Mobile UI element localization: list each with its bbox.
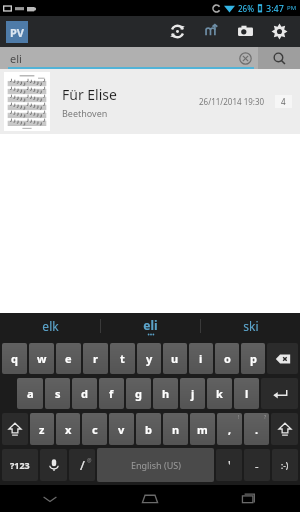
staticText: elk (42, 318, 59, 334)
staticText: o (224, 351, 231, 366)
staticText: d (81, 386, 88, 401)
button[interactable]: Emoticon (272, 449, 298, 481)
button[interactable]: Shift (271, 413, 298, 445)
button[interactable]: Symbols (2, 449, 38, 481)
staticText: e (65, 351, 72, 366)
staticText: a (27, 386, 34, 401)
button[interactable]: 4 (275, 95, 292, 108)
button[interactable]: l (234, 378, 259, 409)
staticText: i (199, 351, 203, 366)
staticText: , (228, 422, 232, 437)
button[interactable]: n (163, 413, 188, 445)
button[interactable]: a (17, 378, 43, 409)
staticText: eli (10, 51, 22, 66)
button[interactable]: Shift (2, 413, 28, 445)
staticText: l (245, 386, 249, 401)
staticText: Beethoven (62, 107, 108, 119)
staticText: 3:47 (266, 2, 284, 14)
button[interactable]: . (244, 413, 269, 445)
staticText: q (11, 351, 18, 366)
staticText: f (109, 386, 114, 401)
staticText: p (250, 351, 257, 366)
staticText: ? (264, 414, 267, 421)
button[interactable]: g (126, 378, 151, 409)
staticText: u (171, 351, 179, 366)
button[interactable]: Backspace (267, 343, 298, 374)
staticText: z (39, 422, 45, 437)
button[interactable]: English (US) (97, 448, 214, 482)
staticText: English (US) (131, 459, 181, 471)
button[interactable]: z (30, 413, 54, 445)
button[interactable]: i (189, 343, 213, 374)
staticText: eli (143, 317, 158, 333)
button[interactable]: f (99, 378, 124, 409)
button[interactable]: eli (0, 47, 258, 69)
button[interactable]: Clear (238, 51, 252, 65)
button[interactable]: q (2, 343, 27, 374)
staticText: j (191, 386, 195, 401)
button[interactable]: App logo (6, 21, 28, 43)
staticText: Für Elise (62, 85, 117, 104)
button[interactable]: v (109, 413, 134, 445)
button[interactable]: r (83, 343, 108, 374)
button[interactable]: ski (201, 313, 300, 339)
button[interactable]: h (153, 378, 178, 409)
button[interactable]: Hide keyboard (0, 485, 100, 512)
button[interactable]: m (190, 413, 215, 445)
staticText: x (65, 422, 72, 437)
button[interactable]: Camera (228, 16, 262, 47)
button[interactable]: eli (101, 313, 200, 339)
button[interactable]: p (241, 343, 265, 374)
staticText: n (172, 422, 180, 437)
staticText: 26/11/2014 19:30 (199, 96, 265, 107)
staticText: ski (243, 318, 259, 334)
button[interactable]: u (163, 343, 187, 374)
staticText: y (146, 351, 153, 366)
staticText: :-) (281, 460, 289, 471)
staticText: k (216, 386, 223, 401)
staticText: w (37, 351, 47, 366)
staticText: t (120, 351, 125, 366)
staticText: @ (87, 457, 92, 464)
button[interactable]: Recent apps (200, 485, 300, 512)
staticText: h (162, 386, 170, 401)
button[interactable]: b (136, 413, 161, 445)
button[interactable]: e (56, 343, 81, 374)
button[interactable]: c (82, 413, 107, 445)
staticText: / (80, 456, 85, 474)
button[interactable]: y (137, 343, 161, 374)
button[interactable]: o (215, 343, 239, 374)
button[interactable]: x (56, 413, 80, 445)
staticText: - (255, 458, 259, 473)
staticText: g (135, 386, 142, 401)
staticText: m (197, 422, 208, 437)
staticText: b (145, 422, 152, 437)
staticText: 4 (281, 96, 286, 107)
staticText: v (118, 422, 125, 437)
button[interactable]: Home (100, 485, 200, 512)
staticText: PV (10, 25, 24, 40)
button[interactable]: k (207, 378, 232, 409)
button[interactable]: t (110, 343, 135, 374)
button[interactable]: elk (0, 313, 100, 339)
button[interactable]: Settings (262, 16, 296, 47)
button[interactable]: Metronome (194, 16, 228, 47)
button[interactable]: Apostrophe (216, 449, 242, 481)
button[interactable]: Für Elise (0, 69, 300, 134)
button[interactable]: Slash (69, 449, 95, 481)
button[interactable]: j (180, 378, 205, 409)
button[interactable]: Voice input (40, 449, 67, 481)
staticText: ! (238, 414, 240, 421)
button[interactable]: w (29, 343, 54, 374)
button[interactable]: Search (258, 47, 300, 69)
button[interactable]: Sync (160, 16, 194, 47)
button[interactable]: Enter (261, 378, 298, 409)
staticText: s (55, 386, 61, 401)
button[interactable]: Dash (244, 449, 270, 481)
staticText: . (255, 422, 259, 437)
button[interactable]: , (217, 413, 242, 445)
button[interactable]: d (72, 378, 97, 409)
staticText: ' (228, 457, 231, 473)
button[interactable]: s (45, 378, 70, 409)
staticText: PM (287, 4, 297, 12)
